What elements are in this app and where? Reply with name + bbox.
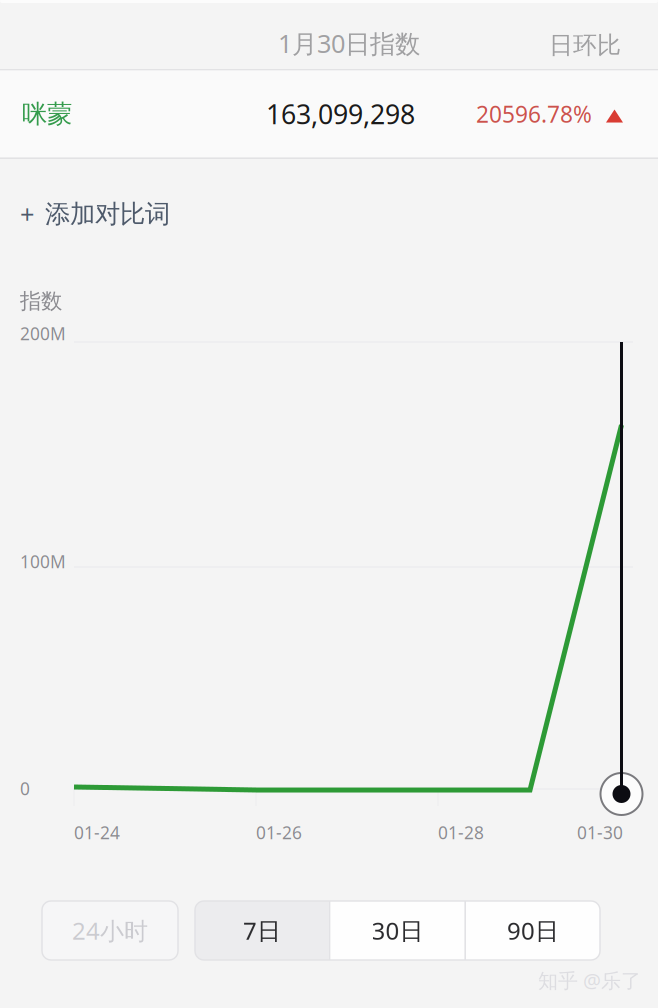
button[interactable]: 7日 bbox=[195, 901, 329, 960]
staticText: 咪蒙 bbox=[22, 98, 72, 129]
staticText: 添加对比词 bbox=[45, 198, 170, 229]
button[interactable]: 30日 bbox=[330, 901, 464, 960]
staticText: 指数 bbox=[20, 288, 62, 314]
staticText: 知乎 @乐了 bbox=[538, 967, 641, 994]
staticText: 163,099,298 bbox=[266, 96, 415, 132]
staticText: 24小时 bbox=[72, 915, 148, 946]
staticText: 01-30 bbox=[577, 821, 623, 844]
staticText: 90日 bbox=[507, 915, 559, 946]
staticText: 20596.78% bbox=[476, 99, 592, 129]
button[interactable]: 90日 bbox=[466, 901, 600, 960]
staticText: 30日 bbox=[371, 915, 423, 946]
staticText: 01-28 bbox=[438, 821, 484, 844]
staticText: 01-26 bbox=[256, 821, 302, 844]
staticText: 日环比 bbox=[549, 30, 621, 60]
staticText: 7日 bbox=[243, 915, 281, 946]
button[interactable]: 咪蒙 bbox=[0, 70, 658, 157]
staticText: 100M bbox=[20, 550, 66, 573]
staticText: 0 bbox=[20, 777, 30, 800]
staticText: 200M bbox=[20, 322, 66, 345]
button[interactable]: 24小时 bbox=[42, 901, 178, 960]
staticText: + bbox=[20, 197, 34, 231]
button[interactable]: + bbox=[0, 159, 658, 269]
staticText: 01-24 bbox=[74, 821, 120, 844]
staticText: 1月30日指数 bbox=[278, 26, 420, 60]
